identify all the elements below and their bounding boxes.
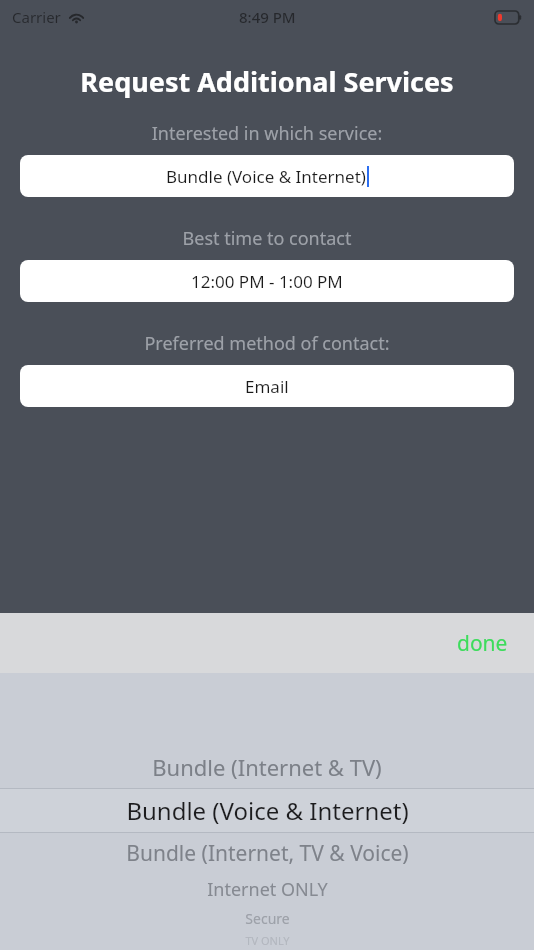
staticText: done (457, 629, 508, 658)
button[interactable]: Bundle (Voice & Internet) (0, 788, 534, 833)
staticText: Best time to contact (20, 226, 514, 251)
button[interactable]: Email (20, 365, 514, 407)
button[interactable]: Secure (0, 906, 534, 931)
button[interactable]: Bundle (Internet & TV) (0, 746, 534, 788)
button[interactable]: done (431, 613, 534, 673)
button[interactable]: Bundle (Internet, TV & Voice) (0, 833, 534, 873)
staticText: Bundle (Internet, TV & Voice) (126, 839, 409, 868)
staticText: 12:00 PM - 1:00 PM (191, 270, 343, 293)
staticText: Carrier (12, 7, 61, 27)
staticText: Bundle (Internet & TV) (152, 752, 382, 782)
staticText: Bundle (Voice & Internet) (126, 794, 409, 827)
staticText: 8:49 PM (239, 7, 296, 27)
staticText: Internet ONLY (207, 877, 328, 902)
button[interactable]: Bundle (Voice & Internet) (20, 155, 514, 197)
button[interactable]: 12:00 PM - 1:00 PM (20, 260, 514, 302)
staticText: Preferred method of contact: (20, 331, 514, 356)
button[interactable]: Internet ONLY (0, 873, 534, 906)
staticText: TV ONLY (245, 933, 290, 948)
staticText: Request Additional Services (0, 63, 534, 100)
staticText: Secure (245, 909, 290, 928)
staticText: Email (245, 375, 289, 398)
staticText: Interested in which service: (20, 121, 514, 146)
staticText: Bundle (Voice & Internet) (166, 165, 366, 188)
